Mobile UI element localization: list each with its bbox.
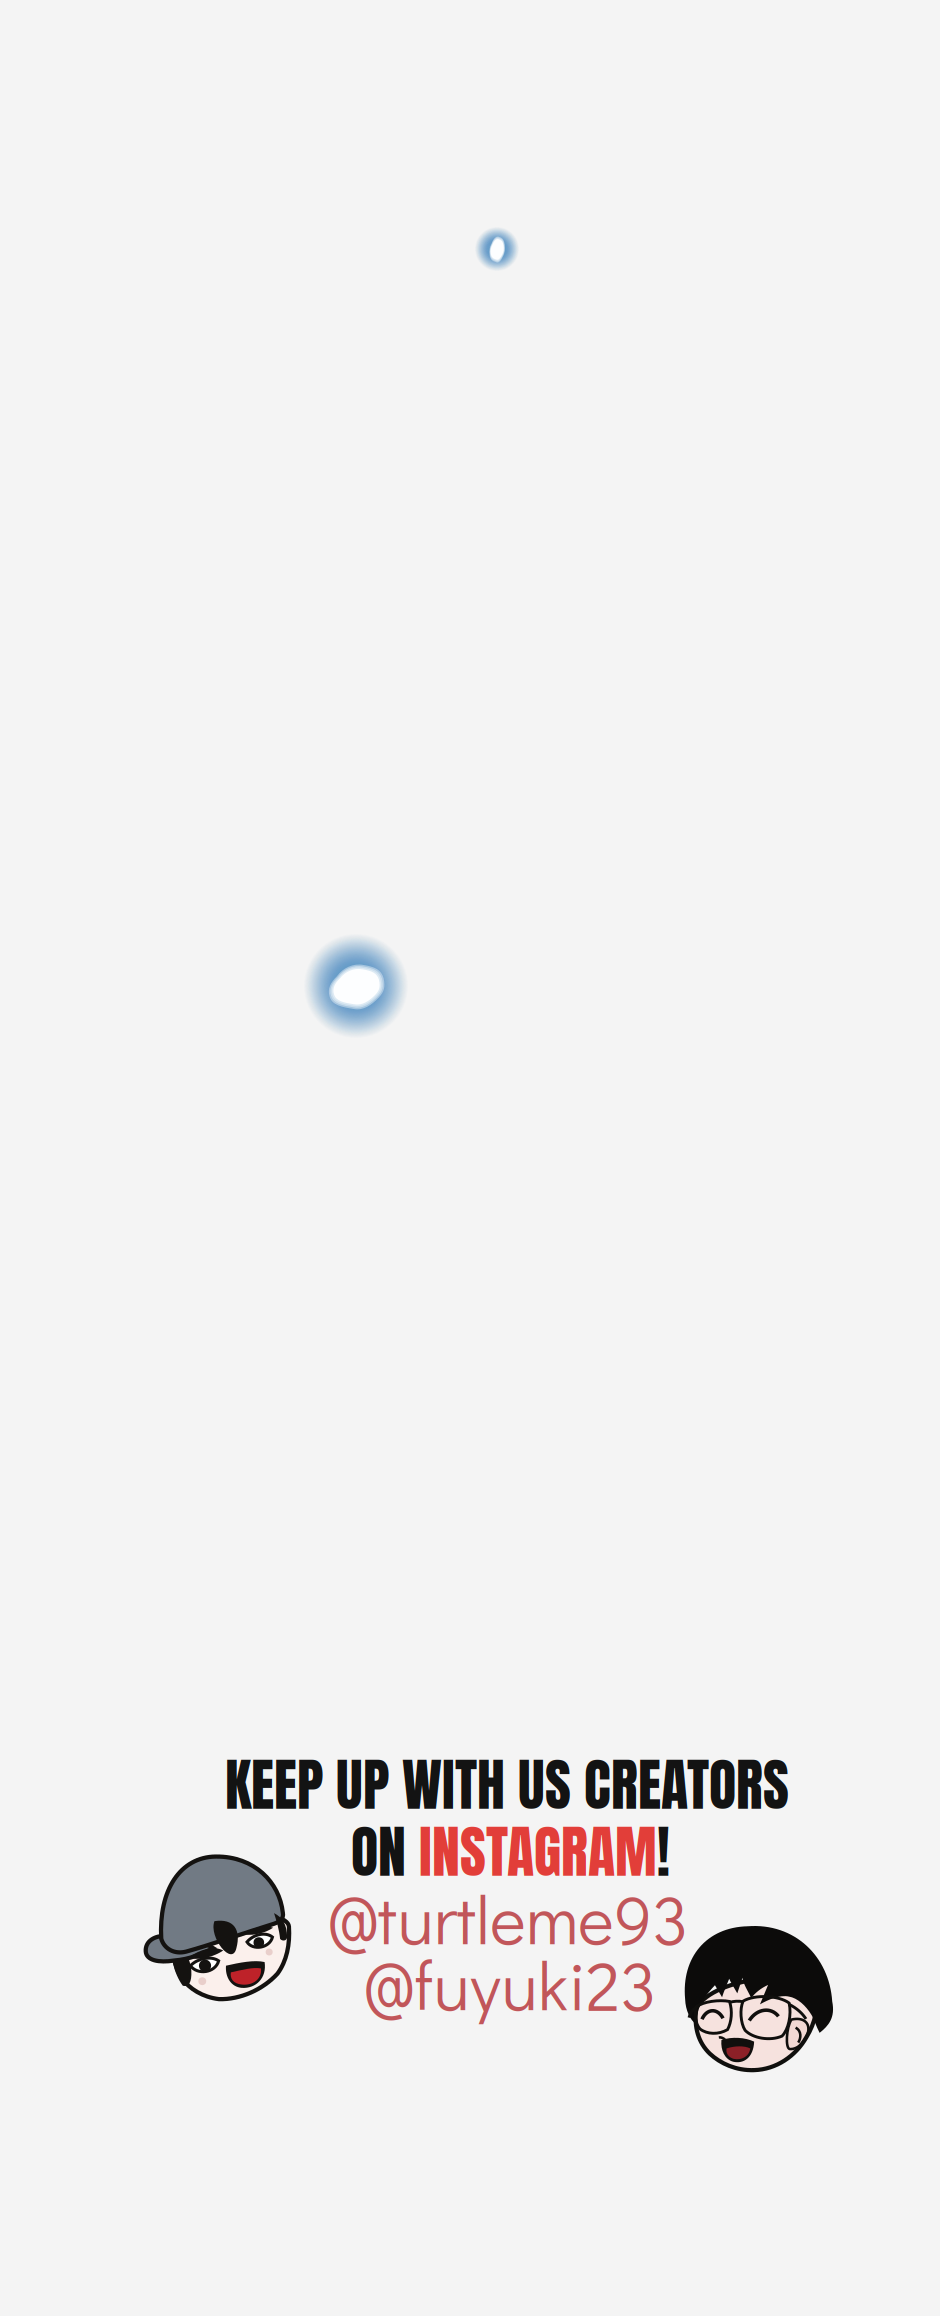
staticText: INSTAGRAM [419, 1810, 657, 1894]
staticText: ON [351, 1810, 419, 1894]
button[interactable]: @turtleme93 [328, 1873, 688, 1962]
staticText: @turtleme93 [328, 1873, 688, 1962]
button[interactable]: @fuyuki23 [364, 1939, 656, 2028]
staticText: KEEP UP WITH US CREATORS [225, 1743, 789, 1827]
staticText: @fuyuki23 [364, 1939, 656, 2028]
staticText: ! [657, 1810, 670, 1894]
